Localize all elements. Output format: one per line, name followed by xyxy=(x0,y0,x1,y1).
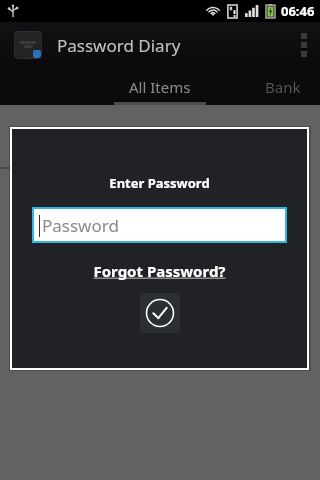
button[interactable]: Confirm password xyxy=(140,293,180,333)
button[interactable]: More options xyxy=(288,22,320,68)
button[interactable]: Bank xyxy=(265,68,320,105)
staticText: All Items xyxy=(129,77,191,97)
staticText: Password Diary xyxy=(57,34,181,57)
staticText: PASSWORD xyxy=(20,41,37,45)
staticText: 06:46 xyxy=(281,2,315,20)
staticText: Forgot Password? xyxy=(93,261,226,281)
staticText: Password xyxy=(42,214,119,237)
staticText: Enter Password xyxy=(109,174,210,192)
button[interactable]: App icon xyxy=(14,31,42,59)
button[interactable]: All Items xyxy=(107,68,212,105)
staticText: DIARY xyxy=(24,45,33,49)
button[interactable]: Forgot Password? xyxy=(87,259,232,283)
staticText: Bank xyxy=(265,77,301,97)
button[interactable]: Password xyxy=(34,209,285,241)
